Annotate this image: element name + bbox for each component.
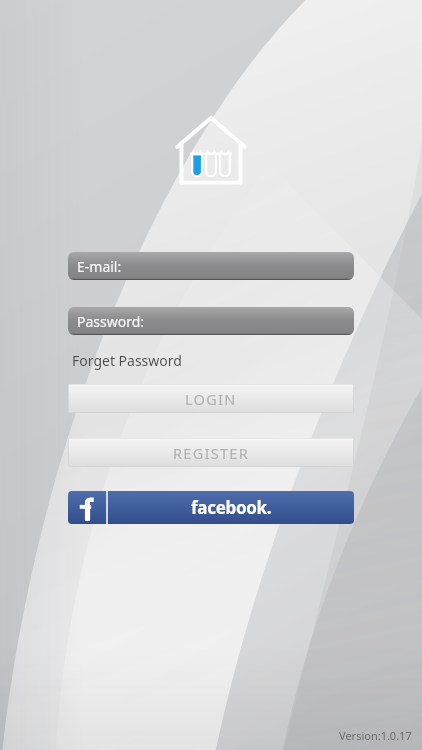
button[interactable]: Sign in with Facebook	[68, 491, 354, 524]
button[interactable]: Forget Password	[68, 349, 186, 372]
button[interactable]: Password:	[68, 307, 354, 335]
button[interactable]: REGISTER	[68, 438, 354, 467]
staticText: LOGIN	[185, 389, 237, 409]
staticText: Forget Password	[72, 351, 182, 370]
staticText: Password:	[77, 312, 145, 331]
button[interactable]: E-mail:	[68, 252, 354, 280]
staticText: REGISTER	[173, 443, 250, 463]
staticText: facebook.	[191, 496, 272, 519]
staticText: E-mail:	[77, 257, 122, 276]
staticText: Version:1.0.17	[339, 728, 412, 743]
button[interactable]: LOGIN	[68, 384, 354, 413]
